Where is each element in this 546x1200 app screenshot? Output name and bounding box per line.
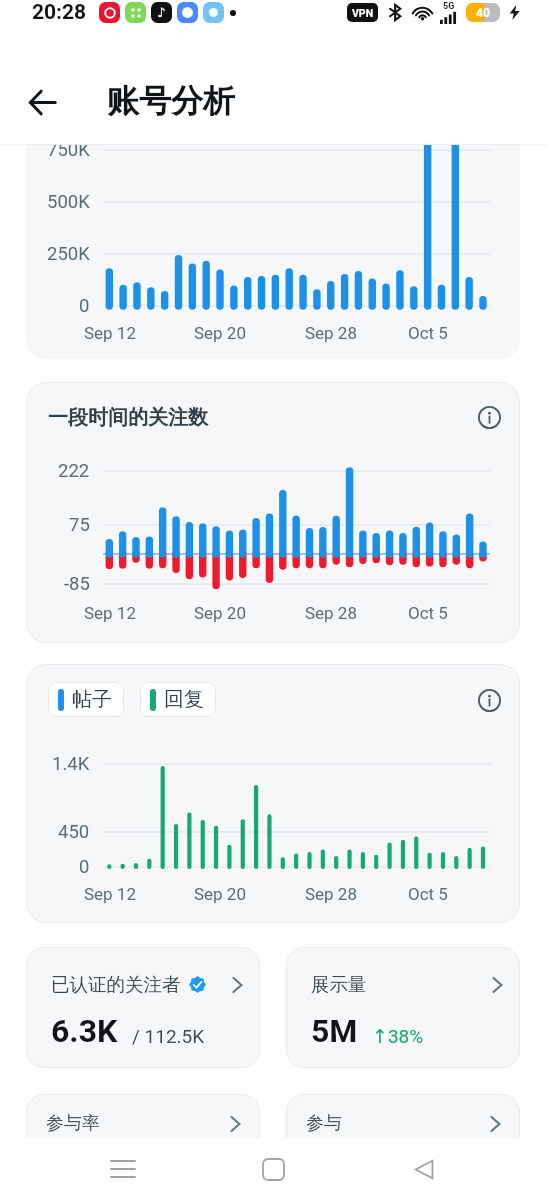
button[interactable]: Home	[245, 1141, 301, 1197]
staticText: ↑38%	[372, 1025, 424, 1047]
staticText: 6.3K	[51, 1012, 118, 1050]
staticText: Sep 28	[305, 884, 357, 904]
staticText: 250K	[47, 243, 90, 265]
staticText: 222	[58, 460, 90, 482]
staticText: Oct 5	[408, 323, 448, 343]
staticText: 帖子	[72, 687, 112, 712]
button[interactable]: 回复	[140, 682, 216, 717]
button[interactable]: Info	[474, 685, 504, 715]
staticText: 75	[69, 514, 90, 536]
staticText: 450	[58, 821, 90, 843]
staticText: Sep 20	[194, 323, 246, 343]
button[interactable]: 已认证的关注者	[26, 947, 260, 1068]
staticText: 500K	[47, 191, 90, 213]
staticText: 参与	[306, 1112, 342, 1135]
staticText: Sep 20	[194, 603, 246, 623]
staticText: Oct 5	[408, 603, 448, 623]
staticText: VPN	[352, 7, 374, 19]
button[interactable]: Back	[396, 1141, 452, 1197]
staticText: 回复	[164, 687, 204, 712]
staticText: 0	[79, 856, 90, 878]
staticText: Sep 12	[84, 884, 136, 904]
staticText: Sep 28	[305, 323, 357, 343]
button[interactable]: Info	[474, 402, 504, 432]
staticText: Sep 12	[84, 323, 136, 343]
staticText: Sep 28	[305, 603, 357, 623]
staticText: 750K	[47, 145, 90, 161]
staticText: 一段时间的关注数	[48, 405, 208, 430]
button[interactable]: 参与率	[26, 1094, 260, 1200]
button[interactable]: 帖子	[48, 682, 124, 717]
button[interactable]: Recent apps	[95, 1141, 151, 1197]
staticText: 1.4K	[52, 753, 90, 775]
staticText: / 112.5K	[132, 1025, 205, 1047]
staticText: 20:28	[32, 0, 87, 25]
staticText: 账号分析	[107, 81, 235, 121]
staticText: -85	[64, 573, 90, 595]
staticText: 40	[476, 6, 490, 20]
button[interactable]: 展示量	[286, 947, 520, 1068]
staticText: 展示量	[311, 973, 367, 996]
staticText: 5G	[443, 1, 455, 12]
button[interactable]: Back	[16, 75, 68, 127]
staticText: 5M	[311, 1012, 358, 1050]
button[interactable]: 参与	[286, 1094, 520, 1200]
staticText: ♪	[157, 5, 166, 20]
staticText: Sep 20	[194, 884, 246, 904]
staticText: 0	[79, 295, 90, 317]
staticText: Sep 12	[84, 603, 136, 623]
staticText: 参与率	[46, 1112, 100, 1135]
staticText: 已认证的关注者	[51, 973, 181, 996]
staticText: Oct 5	[408, 884, 448, 904]
